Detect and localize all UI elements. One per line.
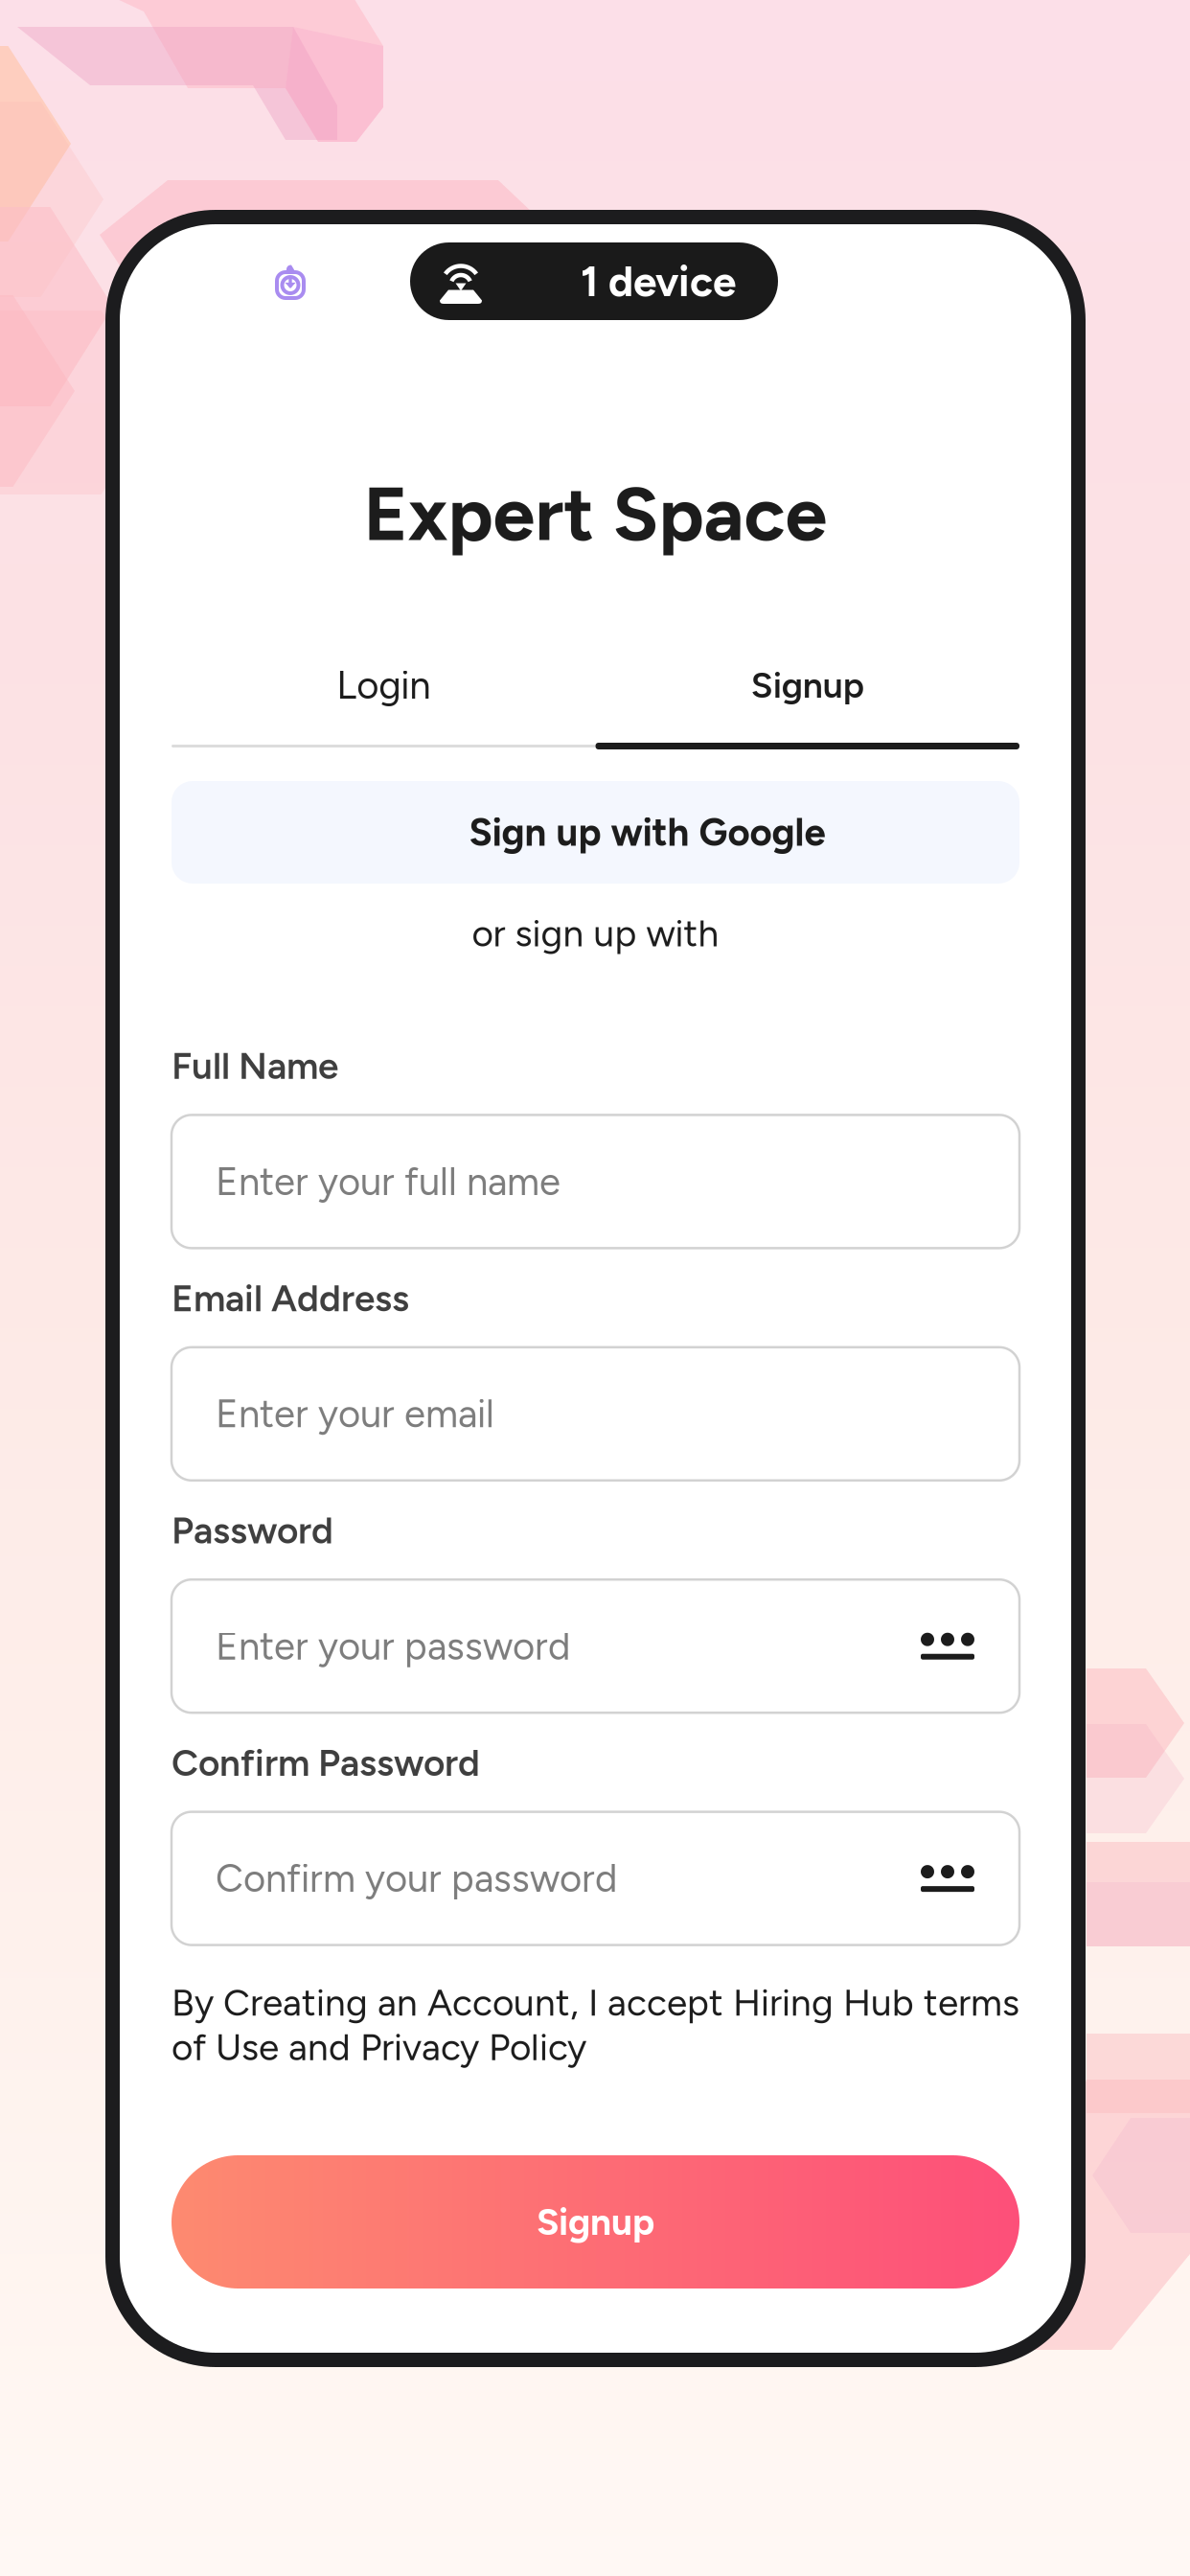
staticText: Enter your password [216,1623,570,1669]
staticText: Email Address [172,1276,409,1320]
button[interactable]: Signup [595,655,1019,716]
button[interactable]: Login [172,655,595,716]
staticText: 1 device [581,256,736,307]
staticText: Confirm Password [172,1741,480,1785]
button[interactable]: Enter your full name [172,1115,1019,1248]
staticText: Confirm your password [216,1855,617,1901]
staticText: Signup [537,2200,654,2244]
staticText: Login [336,662,430,708]
button[interactable]: Signup [172,2155,1019,2288]
button[interactable]: Confirm your password [172,1812,1019,1945]
staticText: Enter your full name [216,1159,561,1205]
staticText: Expert Space [364,468,827,559]
button[interactable]: Enter your password [172,1580,1019,1713]
button[interactable]: Enter your email [172,1347,1019,1480]
staticText: By Creating an Account, I accept Hiring … [172,1980,1019,2069]
staticText: Sign up with Google [469,809,825,855]
button[interactable]: Sign up with Google [172,781,1019,884]
staticText: Enter your email [216,1391,494,1437]
staticText: Signup [751,664,864,707]
staticText: Full Name [172,1044,338,1088]
staticText: or sign up with [472,911,719,956]
staticText: Password [172,1508,333,1553]
